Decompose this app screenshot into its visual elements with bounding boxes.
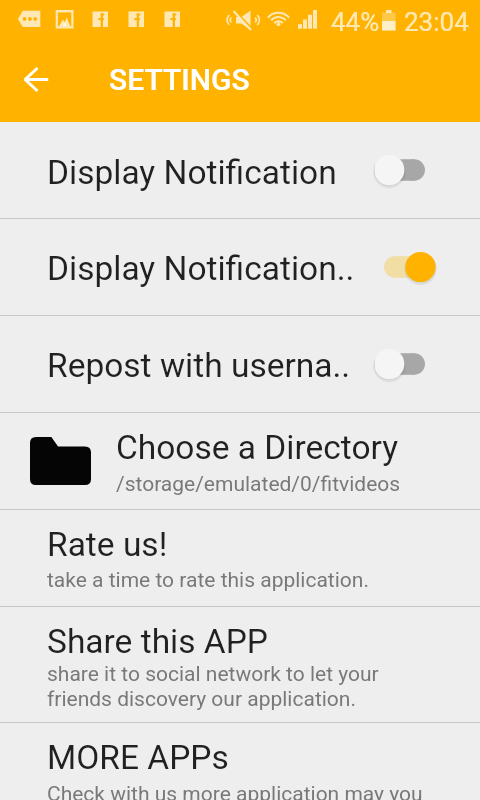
staticText: 23:04 — [404, 7, 469, 37]
button[interactable]: MORE APPs — [0, 722, 480, 800]
button[interactable]: Display Notification.. — [0, 218, 480, 315]
staticText: Display Notification — [47, 153, 337, 192]
staticText: Choose a Directory — [116, 428, 399, 467]
staticText: Repost with userna.. — [47, 346, 351, 385]
staticText: take a time to rate this application. — [47, 568, 369, 593]
staticText: SETTINGS — [109, 62, 250, 97]
button[interactable]: Share this APP — [0, 606, 480, 722]
staticText: /storage/emulated/0/fitvideos — [116, 472, 401, 497]
staticText: share it to social network to let your f… — [47, 662, 379, 712]
staticText: Check with us more application may you — [47, 782, 423, 800]
staticText: 44% — [331, 7, 380, 37]
button[interactable]: Rate us! — [0, 509, 480, 606]
button[interactable]: Display Notification — [0, 122, 480, 218]
staticText: Rate us! — [47, 525, 168, 564]
staticText: MORE APPs — [47, 738, 229, 777]
staticText: Share this APP — [47, 622, 268, 661]
button[interactable]: Choose a Directory — [0, 412, 480, 509]
staticText: Display Notification.. — [47, 249, 355, 288]
button[interactable]: Repost with userna.. — [0, 315, 480, 412]
button[interactable]: Back — [8, 56, 64, 112]
